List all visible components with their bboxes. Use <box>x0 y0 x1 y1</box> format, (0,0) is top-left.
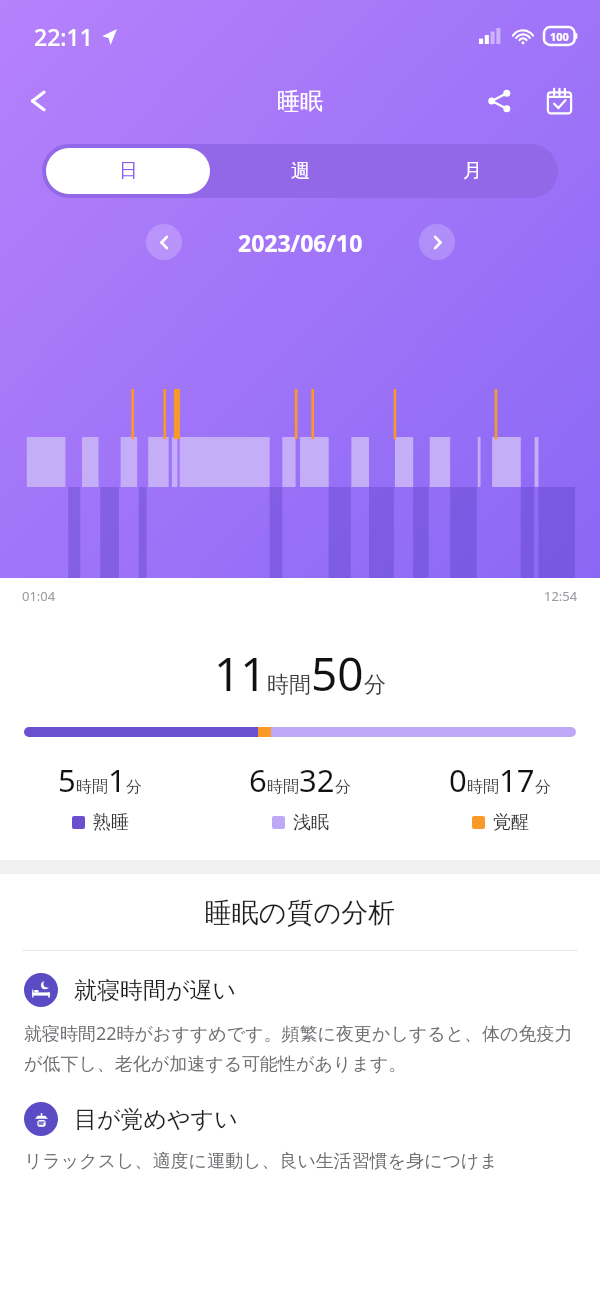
staticText: 5 <box>58 759 76 801</box>
button[interactable]: Share <box>476 78 522 124</box>
staticText: 就寝時間が遅い <box>74 976 237 1005</box>
staticText: 0 <box>449 759 467 801</box>
staticText: 目が覚めやすい <box>74 1105 238 1134</box>
staticText: 時間 <box>267 671 311 699</box>
staticText: 分 <box>535 777 551 797</box>
button[interactable]: 目が覚めやすい <box>0 1102 600 1173</box>
staticText: 時間 <box>76 777 108 797</box>
button[interactable]: 就寝時間が遅い <box>0 973 600 1076</box>
staticText: 11 <box>214 642 267 705</box>
staticText: 50 <box>311 642 364 705</box>
staticText: 22:11 <box>34 21 93 52</box>
staticText: 就寝時間22時がおすすめです。頻繁に夜更かしすると、体の免疫力が低下し、老化が加… <box>24 1021 576 1076</box>
staticText: 1 <box>108 759 126 801</box>
staticText: 時間 <box>467 777 499 797</box>
button[interactable]: 日 <box>46 148 210 194</box>
staticText: 日 <box>119 159 138 183</box>
button[interactable]: 5 <box>0 759 200 834</box>
staticText: 100 <box>550 29 569 44</box>
button[interactable]: Previous day <box>146 224 182 260</box>
button[interactable]: 6 <box>200 759 400 834</box>
button[interactable]: 月 <box>390 148 554 194</box>
staticText: 睡眠 <box>277 87 323 116</box>
staticText: 分 <box>126 777 142 797</box>
staticText: 睡眠の質の分析 <box>0 896 600 930</box>
button[interactable]: 週 <box>218 148 382 194</box>
staticText: 2023/06/10 <box>238 227 363 258</box>
button[interactable]: 0 <box>400 759 600 834</box>
button[interactable]: Back <box>16 77 64 125</box>
button[interactable]: Next day <box>419 224 455 260</box>
staticText: 32 <box>299 759 335 801</box>
staticText: 17 <box>499 759 535 801</box>
staticText: 覚醒 <box>493 811 529 834</box>
staticText: 月 <box>463 159 482 183</box>
staticText: 12:54 <box>544 587 578 605</box>
staticText: 浅眠 <box>293 811 329 834</box>
button[interactable]: Calendar <box>536 78 582 124</box>
staticText: 分 <box>335 777 351 797</box>
staticText: 01:04 <box>22 587 56 605</box>
staticText: 熟睡 <box>93 811 129 834</box>
staticText: 6 <box>249 759 267 801</box>
staticText: リラックスし、適度に運動し、良い生活習慣を身につけま <box>24 1150 576 1173</box>
staticText: 時間 <box>267 777 299 797</box>
staticText: 分 <box>364 671 386 699</box>
staticText: 週 <box>291 159 310 183</box>
